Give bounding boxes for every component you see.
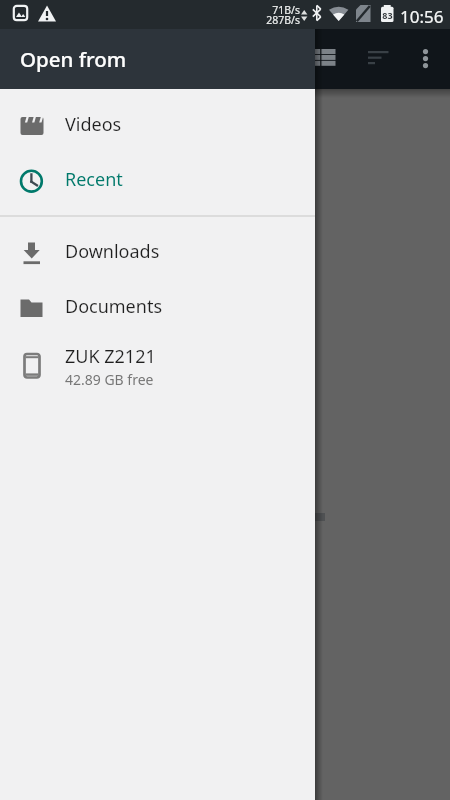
button[interactable]: ZUK Z2121 bbox=[0, 334, 315, 398]
staticText: Open from bbox=[20, 45, 127, 73]
staticText: 71B/s bbox=[245, 3, 300, 17]
staticText: 10:56 bbox=[400, 5, 444, 28]
staticText: ZUK Z2121 bbox=[65, 344, 156, 369]
staticText: 287B/s bbox=[245, 13, 300, 27]
button[interactable]: Documents bbox=[0, 279, 315, 334]
button[interactable]: Recent bbox=[0, 152, 315, 207]
staticText: 42.89 GB free bbox=[65, 370, 154, 389]
button[interactable]: Videos bbox=[0, 97, 315, 152]
staticText: Videos bbox=[65, 112, 122, 137]
staticText: 83 bbox=[381, 9, 394, 21]
staticText: Downloads bbox=[65, 239, 160, 264]
staticText: Documents bbox=[65, 294, 163, 319]
button[interactable]: Downloads bbox=[0, 224, 315, 279]
button[interactable] bbox=[420, 49, 431, 77]
staticText: Recent bbox=[65, 167, 123, 192]
